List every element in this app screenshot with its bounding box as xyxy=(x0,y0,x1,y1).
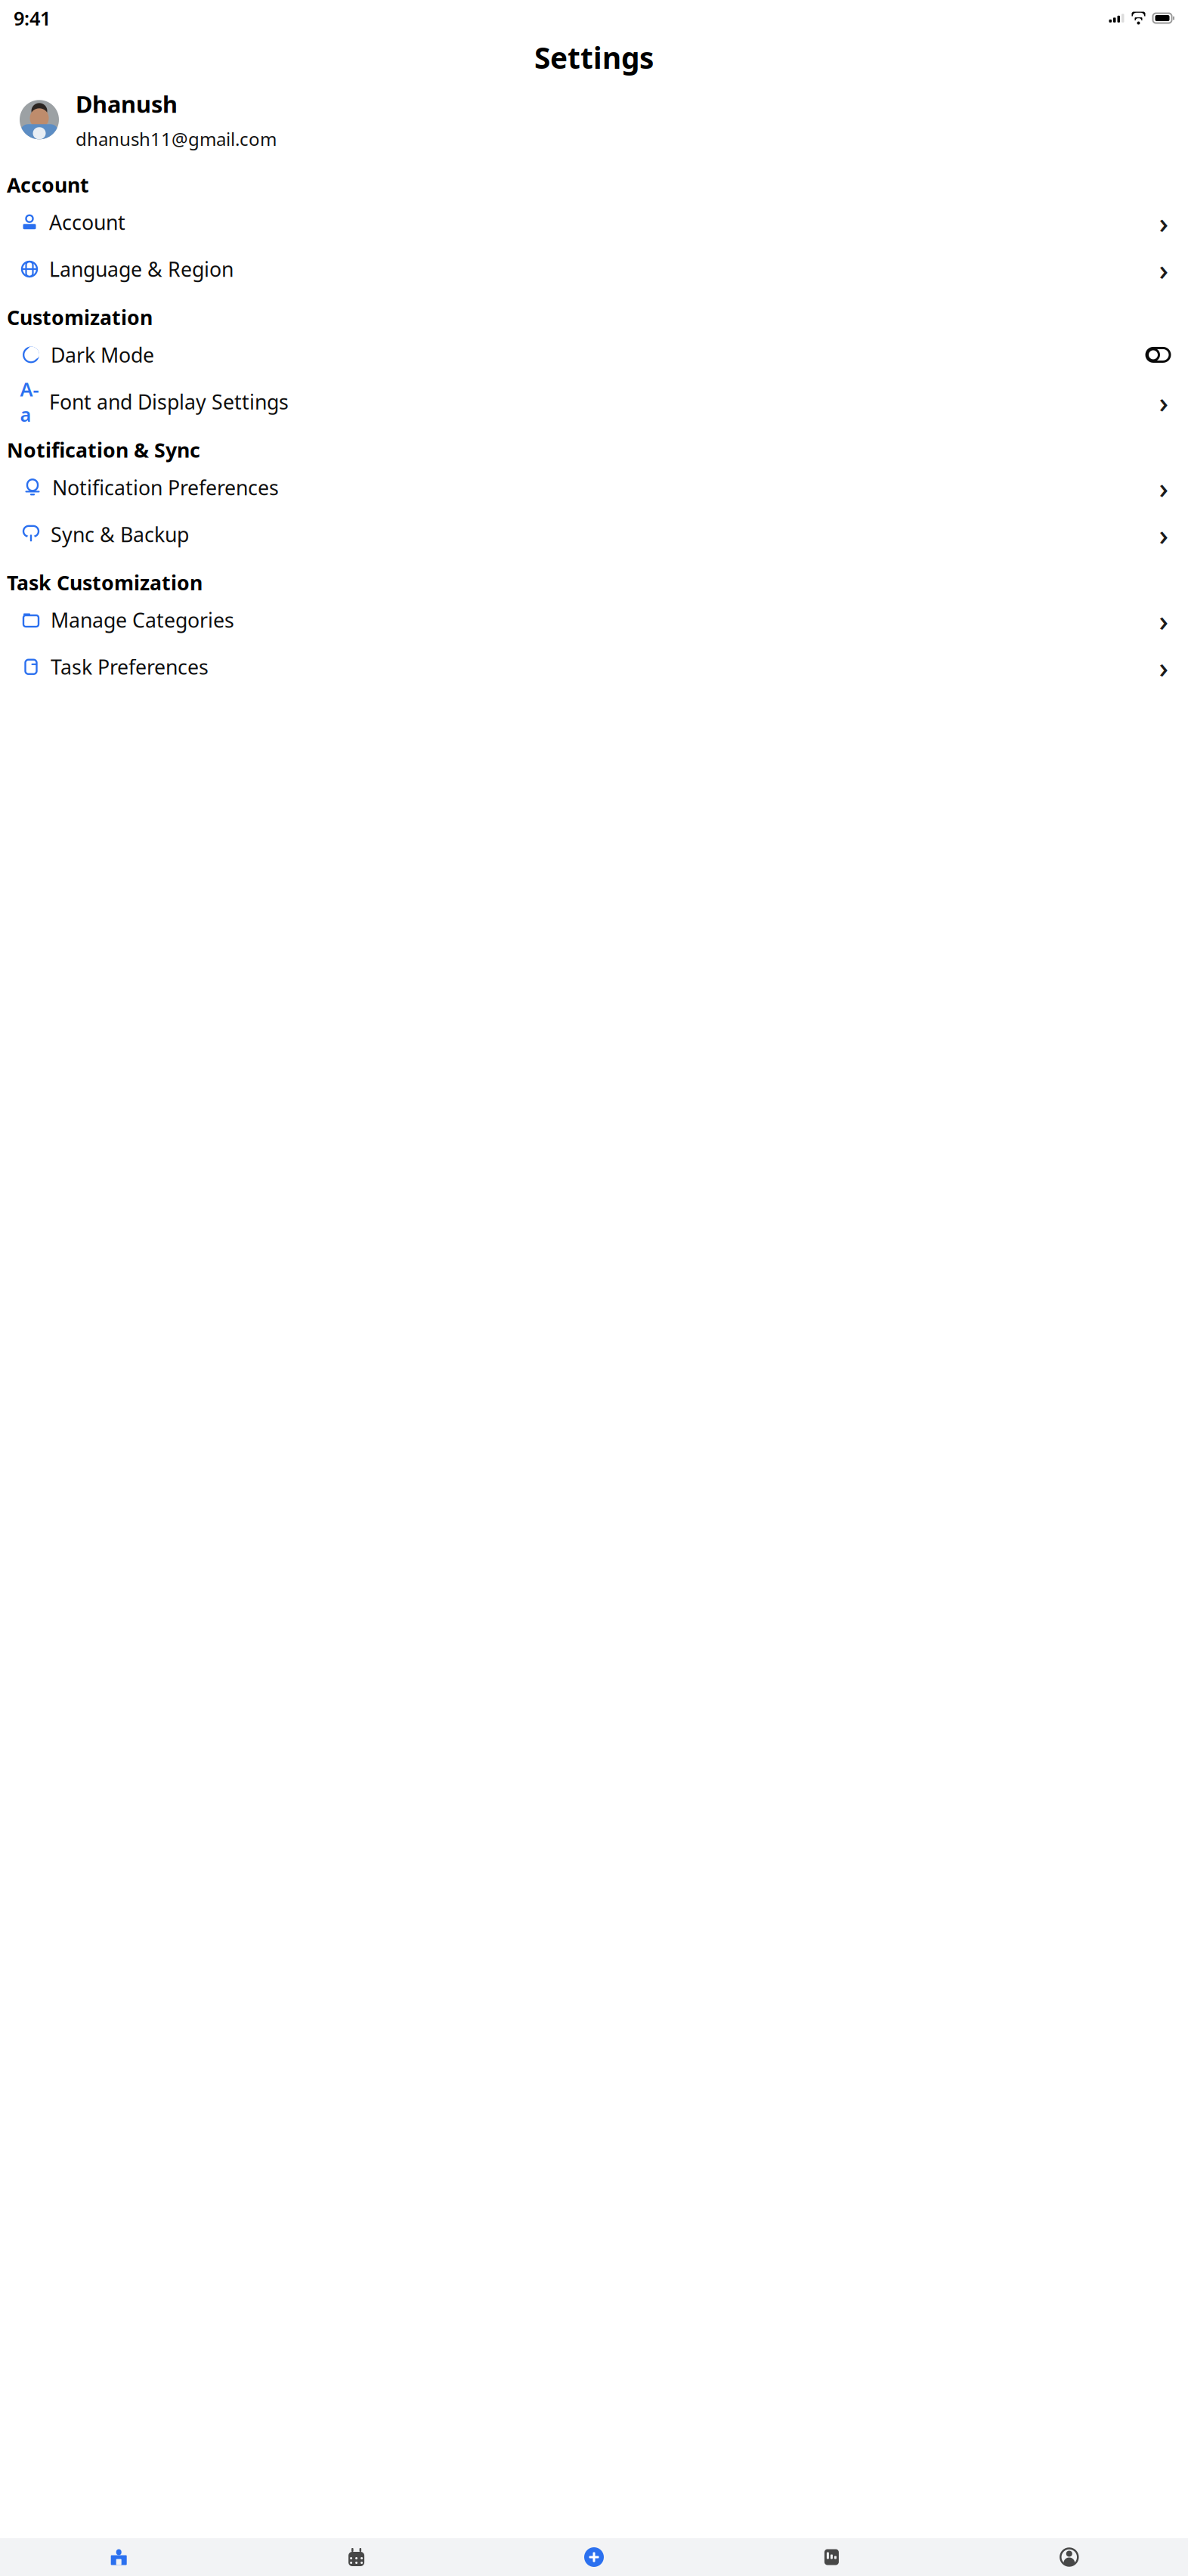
staticText: Account xyxy=(49,209,125,236)
staticText: › xyxy=(1159,382,1169,421)
staticText: Customization xyxy=(7,304,153,331)
button[interactable]: Dhanush xyxy=(0,88,1188,151)
button[interactable]: Home xyxy=(0,2538,238,2576)
button[interactable]: Dark Mode xyxy=(0,334,1188,375)
button[interactable]: Task Preferences xyxy=(0,646,1188,687)
button[interactable]: Profile xyxy=(950,2538,1188,2576)
staticText: Task Preferences xyxy=(51,653,209,680)
button[interactable]: Language & Region xyxy=(0,249,1188,289)
button[interactable]: Account xyxy=(0,202,1188,243)
staticText: dhanush11@gmail.com xyxy=(76,127,277,151)
staticText: Dhanush xyxy=(76,88,178,119)
staticText: 9:41 xyxy=(14,5,51,31)
staticText: › xyxy=(1159,601,1169,639)
staticText: Notification Preferences xyxy=(52,474,279,501)
button[interactable]: Aa xyxy=(0,381,1188,422)
button[interactable]: Sync & Backup xyxy=(0,514,1188,555)
button[interactable]: Calendar xyxy=(238,2538,475,2576)
staticText: Language & Region xyxy=(49,256,234,282)
staticText: › xyxy=(1159,203,1169,242)
staticText: Aa xyxy=(20,376,39,427)
staticText: Font and Display Settings xyxy=(49,388,289,415)
button[interactable]: Statistics xyxy=(713,2538,950,2576)
staticText: Settings xyxy=(534,38,654,77)
staticText: › xyxy=(1159,515,1169,554)
staticText: Account xyxy=(7,171,89,198)
button[interactable]: Add task xyxy=(475,2538,713,2576)
staticText: Dark Mode xyxy=(51,341,154,368)
staticText: › xyxy=(1159,250,1169,288)
staticText: Notification & Sync xyxy=(7,436,200,463)
staticText: › xyxy=(1159,468,1169,507)
button[interactable]: Manage Categories xyxy=(0,600,1188,640)
staticText: Sync & Backup xyxy=(51,521,189,548)
staticText: Manage Categories xyxy=(51,607,234,633)
staticText: Task Customization xyxy=(7,569,203,596)
staticText: › xyxy=(1159,647,1169,686)
button[interactable]: Notification Preferences xyxy=(0,467,1188,508)
